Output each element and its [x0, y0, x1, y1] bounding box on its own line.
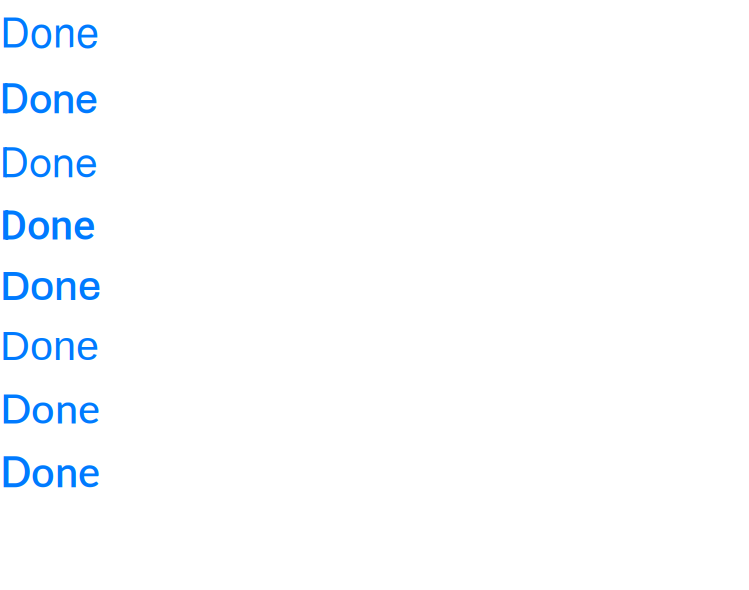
- staticText: Done: [0, 0, 99, 59]
- staticText: Done: [0, 323, 99, 369]
- staticText: Done: [0, 383, 100, 432]
- staticText: Done: [0, 264, 101, 309]
- staticText: Done: [0, 201, 95, 250]
- staticText: Done: [0, 73, 98, 123]
- staticText: Done: [0, 137, 97, 187]
- staticText: Done: [0, 446, 100, 496]
